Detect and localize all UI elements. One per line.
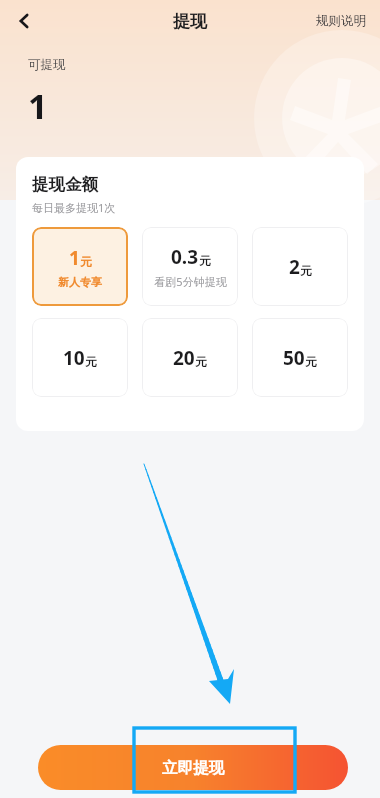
button[interactable]: 立即提现 bbox=[38, 745, 348, 790]
staticText: 可提现 bbox=[28, 57, 66, 73]
button[interactable]: Back bbox=[6, 3, 42, 39]
staticText: 看剧5分钟提现 bbox=[154, 274, 227, 289]
staticText: 元 bbox=[80, 255, 92, 269]
button[interactable]: 规则说明 bbox=[302, 5, 380, 37]
staticText: 20 bbox=[173, 345, 195, 371]
button[interactable]: 20 bbox=[142, 318, 238, 397]
button[interactable]: 0.3 bbox=[142, 227, 238, 306]
button[interactable]: 50 bbox=[252, 318, 348, 397]
staticText: 元 bbox=[199, 254, 211, 268]
staticText: 1 bbox=[69, 245, 80, 271]
staticText: 立即提现 bbox=[162, 758, 224, 778]
staticText: 10 bbox=[63, 345, 85, 371]
button[interactable]: 2 bbox=[252, 227, 348, 306]
staticText: 每日最多提现1次 bbox=[32, 200, 116, 215]
staticText: 1 bbox=[28, 83, 48, 129]
staticText: 50 bbox=[283, 345, 305, 371]
staticText: 提现金额 bbox=[32, 174, 98, 195]
staticText: 元 bbox=[300, 264, 312, 278]
staticText: 元 bbox=[305, 355, 317, 369]
staticText: 新人专享 bbox=[58, 275, 102, 289]
staticText: 提现 bbox=[173, 11, 207, 32]
staticText: 规则说明 bbox=[316, 13, 366, 29]
staticText: 元 bbox=[195, 355, 207, 369]
staticText: 2 bbox=[289, 254, 300, 280]
button[interactable]: 10 bbox=[32, 318, 128, 397]
staticText: 元 bbox=[85, 355, 97, 369]
staticText: 0.3 bbox=[171, 244, 199, 270]
button[interactable]: 1 bbox=[32, 227, 128, 306]
